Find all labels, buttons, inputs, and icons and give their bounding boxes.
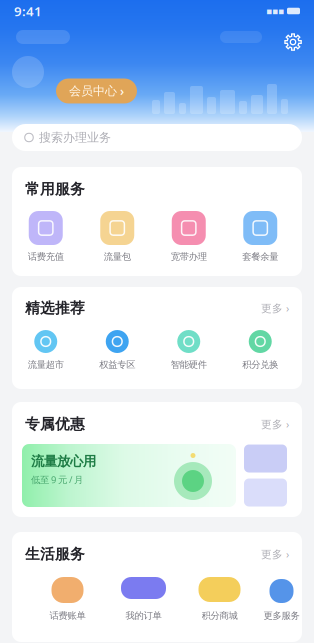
button[interactable]: 流量放心用 xyxy=(22,444,236,507)
button[interactable]: 宽带办理 xyxy=(153,211,224,262)
staticText: 更多服务 xyxy=(263,610,299,621)
staticText: 话费充值 xyxy=(28,251,64,262)
staticText: 搜索办理业务 xyxy=(39,130,111,145)
button[interactable]: 套餐余量 xyxy=(224,211,296,262)
button[interactable]: 积分商城 xyxy=(181,577,257,621)
staticText: 生活服务 xyxy=(25,545,85,563)
staticText: 宽带办理 xyxy=(171,251,207,262)
staticText: 低至 9 元 / 月 xyxy=(31,473,83,486)
staticText: 套餐余量 xyxy=(242,251,278,262)
staticText: 流量超市 xyxy=(28,359,64,370)
staticText: 智能硬件 xyxy=(171,359,207,370)
staticText: 常用服务 xyxy=(25,180,85,198)
button[interactable]: 流量包 xyxy=(81,211,153,262)
staticText: 积分兑换 xyxy=(242,359,278,370)
staticText: 专属优惠 xyxy=(25,415,85,433)
staticText: 流量包 xyxy=(104,251,131,262)
staticText: 精选推荐 xyxy=(25,299,85,317)
button[interactable]: 搜索办理业务 xyxy=(12,124,302,151)
staticText: › xyxy=(120,83,124,99)
button[interactable]: 话费账单 xyxy=(29,577,105,621)
button[interactable]: 智能硬件 xyxy=(153,330,224,370)
button[interactable]: 会员中心 xyxy=(56,78,137,103)
staticText: 流量放心用 xyxy=(31,453,96,469)
staticText: 会员中心 xyxy=(69,84,117,98)
button[interactable] xyxy=(244,478,287,506)
button[interactable]: 流量超市 xyxy=(10,330,81,370)
button[interactable]: 更多 › xyxy=(261,417,289,431)
staticText: 更多 › xyxy=(261,547,289,561)
button[interactable] xyxy=(244,444,287,472)
button[interactable]: 更多服务 xyxy=(257,577,305,621)
button[interactable]: 更多 › xyxy=(261,547,289,561)
button[interactable]: 话费充值 xyxy=(10,211,81,262)
staticText: 9:41 xyxy=(14,2,42,20)
button[interactable]: 更多 › xyxy=(261,301,289,315)
staticText: 话费账单 xyxy=(49,610,85,621)
staticText: 我的订单 xyxy=(125,610,161,621)
staticText: 积分商城 xyxy=(201,610,237,621)
button[interactable]: 我的订单 xyxy=(105,577,181,621)
staticText: ▪▪▪ xyxy=(266,6,284,16)
staticText: 更多 › xyxy=(261,417,289,431)
button[interactable]: 积分兑换 xyxy=(224,330,296,370)
button[interactable]: 权益专区 xyxy=(81,330,153,370)
staticText: 更多 › xyxy=(261,301,289,315)
button[interactable]: Settings xyxy=(278,27,308,57)
staticText: 权益专区 xyxy=(99,359,135,370)
